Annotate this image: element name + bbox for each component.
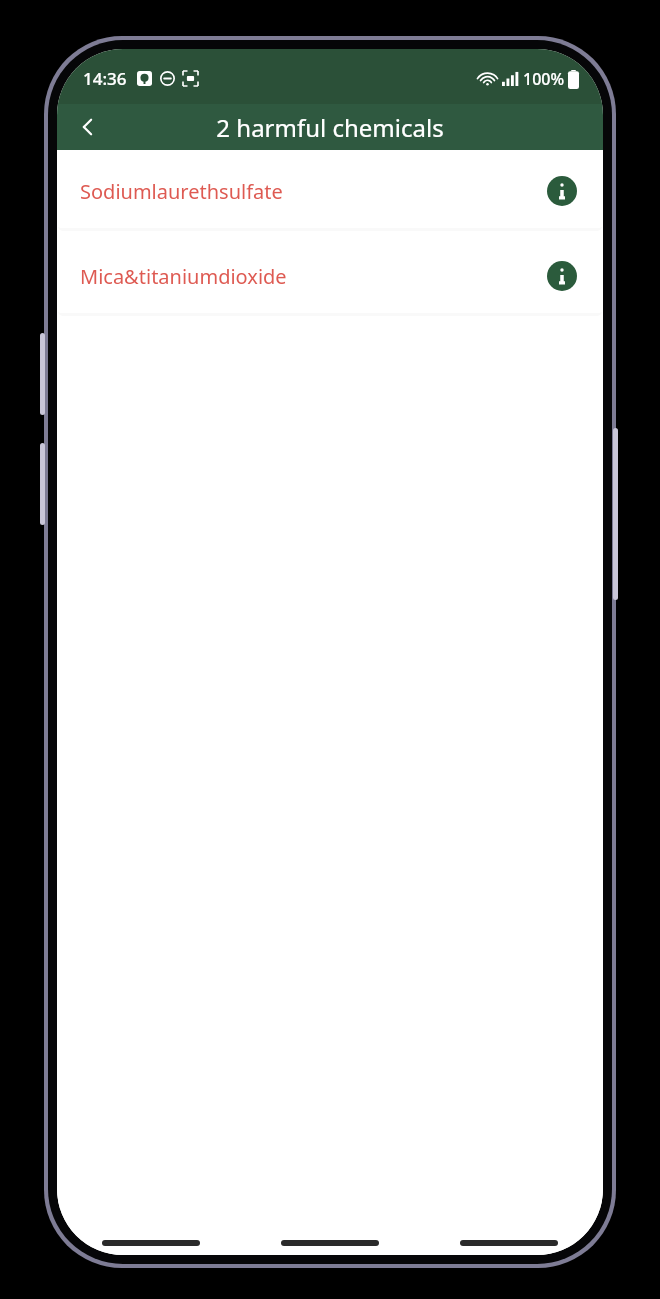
staticText: 2 harmful chemicals [216,111,444,144]
button[interactable]: Sodiumlaurethsulfate [57,154,603,228]
button[interactable]: Info [544,258,580,294]
staticText: 100% [523,68,565,90]
button[interactable]: Mica&titaniumdioxide [57,239,603,313]
staticText: Sodiumlaurethsulfate [80,178,544,205]
button[interactable]: Info [544,173,580,209]
button[interactable]: Back [67,106,109,148]
staticText: Mica&titaniumdioxide [80,263,544,290]
staticText: 14:36 [83,67,127,90]
